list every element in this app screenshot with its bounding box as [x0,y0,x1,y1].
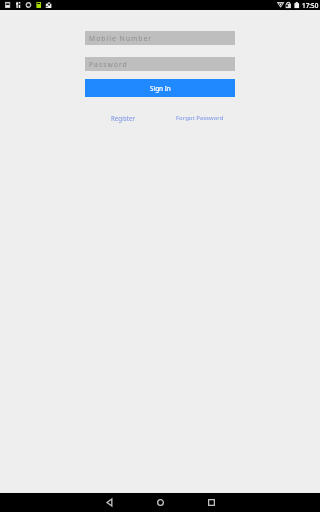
button[interactable]: Mobile Number [85,31,235,45]
button[interactable]: Register [85,112,160,124]
button[interactable]: Recent apps [196,493,226,512]
staticText: Forgot Password [176,114,224,122]
button[interactable]: Back [94,493,124,512]
staticText: Sign In [150,84,171,93]
button[interactable]: Home [145,493,175,512]
staticText: Password [89,60,128,69]
button[interactable]: Password [85,57,235,71]
button[interactable]: Sign In [85,79,235,97]
button[interactable]: Forgot Password [160,112,235,124]
staticText: Register [111,114,135,122]
staticText: Mobile Number [89,34,153,43]
staticText: 17:50 [302,1,319,10]
